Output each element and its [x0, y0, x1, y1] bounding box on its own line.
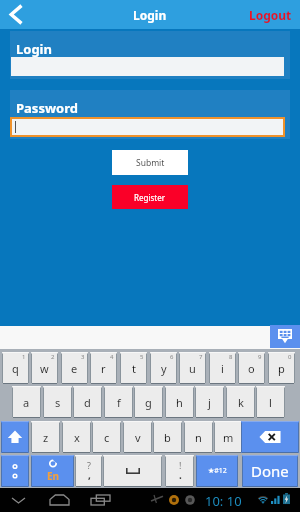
staticText: Submit — [136, 157, 165, 169]
staticText: 6 — [170, 353, 174, 361]
button[interactable]: c — [92, 421, 121, 453]
staticText: 3 — [81, 353, 85, 361]
staticText: b — [164, 430, 171, 445]
button[interactable]: Switch keyboard — [270, 325, 300, 348]
staticText: En — [47, 469, 60, 483]
button[interactable]: v — [123, 421, 152, 453]
staticText: 4 — [110, 353, 114, 361]
other: Space — [126, 468, 140, 474]
button[interactable]: Back — [6, 488, 32, 512]
staticText: f — [117, 395, 121, 410]
staticText: . — [179, 468, 182, 482]
button[interactable]: Password field — [10, 117, 285, 137]
staticText: Register — [134, 192, 166, 203]
button[interactable]: Space — [103, 455, 162, 487]
button[interactable]: Back — [0, 0, 32, 29]
button[interactable]: f — [104, 386, 133, 418]
button[interactable]: j — [195, 386, 224, 418]
button[interactable]: l — [256, 386, 285, 418]
other: Symbols — [208, 466, 227, 476]
button[interactable]: Recent apps — [86, 488, 116, 512]
staticText: o — [248, 361, 255, 376]
staticText: 10: 10 — [205, 492, 242, 510]
button[interactable]: ! — [165, 455, 194, 487]
other: Shift — [5, 427, 25, 447]
staticText: ? — [87, 459, 91, 471]
staticText: Done — [251, 461, 289, 481]
staticText: a — [23, 395, 30, 410]
staticText: 1 — [22, 353, 26, 361]
staticText: q — [12, 361, 19, 376]
button[interactable]: n — [184, 421, 213, 453]
staticText: , — [88, 468, 91, 482]
button[interactable]: t — [120, 352, 147, 384]
staticText: ★#12 — [208, 466, 227, 476]
staticText: j — [208, 395, 211, 410]
button[interactable]: y — [150, 352, 177, 384]
button[interactable]: s — [43, 386, 72, 418]
staticText: u — [189, 361, 196, 376]
staticText: c — [104, 430, 110, 445]
button[interactable]: Settings — [1, 455, 29, 487]
staticText: x — [74, 430, 80, 445]
staticText: n — [195, 430, 202, 445]
button[interactable]: r — [90, 352, 117, 384]
staticText: 5 — [140, 353, 144, 361]
staticText: 9 — [258, 353, 262, 361]
staticText: 2 — [51, 353, 55, 361]
button[interactable]: d — [73, 386, 102, 418]
staticText: g — [145, 395, 152, 410]
button[interactable]: g — [134, 386, 163, 418]
button[interactable]: Language — [31, 455, 74, 487]
staticText: w — [40, 361, 49, 376]
button[interactable]: e — [61, 352, 88, 384]
staticText: Password — [16, 99, 78, 117]
button[interactable]: m — [214, 421, 243, 453]
staticText: v — [135, 430, 141, 445]
button[interactable]: Done — [242, 455, 298, 487]
other: Backspace — [259, 430, 281, 444]
button[interactable]: z — [31, 421, 60, 453]
other: Language — [41, 458, 65, 484]
button[interactable]: Submit — [112, 150, 188, 175]
staticText: m — [223, 430, 234, 445]
other: Settings — [9, 461, 21, 481]
button[interactable]: Logout — [241, 0, 300, 29]
button[interactable]: Backspace — [241, 421, 299, 453]
staticText: 0 — [288, 353, 292, 361]
button[interactable]: o — [238, 352, 265, 384]
button[interactable]: u — [179, 352, 206, 384]
button[interactable]: Register — [112, 185, 188, 209]
button[interactable]: Shift — [1, 421, 29, 453]
button[interactable]: w — [31, 352, 58, 384]
staticText: i — [221, 361, 224, 376]
button[interactable]: x — [62, 421, 91, 453]
staticText: Login — [133, 7, 167, 23]
button[interactable]: ? — [75, 455, 102, 487]
staticText: 7 — [199, 353, 203, 361]
button[interactable]: a — [12, 386, 41, 418]
button[interactable]: Symbols — [196, 455, 238, 487]
staticText: d — [84, 395, 91, 410]
staticText: s — [55, 395, 61, 410]
staticText: y — [161, 361, 167, 376]
button[interactable]: i — [209, 352, 236, 384]
staticText: ! — [179, 459, 182, 471]
button[interactable]: h — [165, 386, 194, 418]
staticText: Login — [16, 40, 52, 58]
staticText: z — [43, 430, 49, 445]
staticText: h — [176, 395, 183, 410]
button[interactable]: b — [153, 421, 182, 453]
button[interactable]: Home — [45, 488, 75, 512]
button[interactable]: q — [2, 352, 29, 384]
staticText: t — [132, 361, 136, 376]
staticText: 8 — [229, 353, 233, 361]
button[interactable]: p — [268, 352, 295, 384]
staticText: l — [269, 395, 272, 410]
staticText: p — [278, 361, 285, 376]
staticText: Logout — [249, 7, 292, 23]
staticText: e — [71, 361, 78, 376]
button[interactable]: k — [226, 386, 255, 418]
staticText: k — [238, 395, 244, 410]
